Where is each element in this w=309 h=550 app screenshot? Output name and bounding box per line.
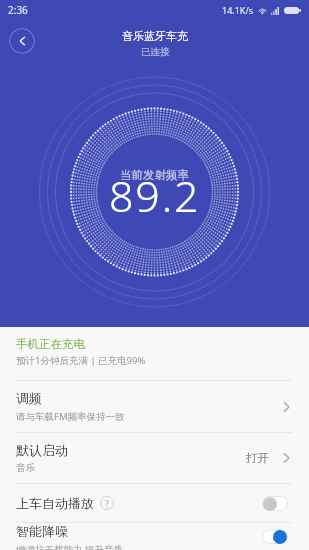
button[interactable]: Toggle [262,496,288,511]
staticText: 2:36 [8,3,28,17]
staticText: 预计1分钟后充满 | 已充电99% [16,354,146,367]
staticText: 智能降噪 [16,523,68,539]
staticText: 手机正在充电 [16,337,85,351]
staticText: 89.2 [109,166,201,225]
staticText: 已连接 [141,46,170,58]
button[interactable]: Back [9,28,35,54]
staticText: ? [105,497,109,509]
button[interactable]: 智能降噪 [0,523,309,550]
staticText: 音乐蓝牙车充 [122,29,188,43]
button[interactable]: 默认启动 [0,433,309,483]
staticText: 打开 [246,451,269,465]
staticText: 请与车载FM频率保持一致 [16,410,125,423]
staticText: 14.1K/s [222,4,254,16]
staticText: 增强抗干扰能力 提升音质 [16,543,123,550]
button[interactable]: 调频 [0,381,309,432]
staticText: 音乐 [16,462,35,474]
staticText: 上车自动播放 [16,495,94,511]
staticText: 默认启动 [16,442,68,458]
staticText: 当前发射频率 [120,168,189,182]
button[interactable]: 上车自动播放 [0,484,309,522]
staticText: 调频 [16,390,42,406]
button[interactable]: Toggle [262,529,288,544]
